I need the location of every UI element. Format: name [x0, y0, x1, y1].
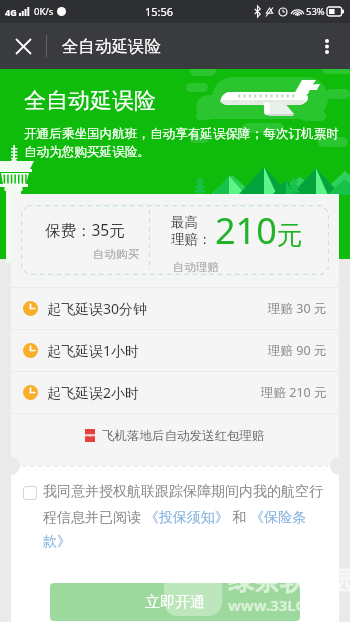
staticText: 0K/s: [34, 5, 54, 18]
button[interactable]: 起飞延误1小时: [11, 330, 339, 371]
staticText: 起飞延误1小时: [47, 341, 140, 360]
staticText: 自动购买: [93, 247, 139, 261]
staticText: 理赔 210 元: [261, 384, 327, 401]
staticText: 我同意并授权航联跟踪保障期间内我的航空行程信息并已阅读 《投保须知》 和 《保险…: [43, 483, 330, 550]
button[interactable]: Close: [0, 23, 46, 69]
button[interactable]: More options: [304, 23, 350, 69]
staticText: 起飞延误2小时: [47, 383, 140, 402]
staticText: 全自动延误险: [24, 87, 156, 115]
staticText: 开通后乘坐国内航班，自动享有延误保障；每次订机票时 自动为您购买延误险。: [24, 126, 339, 160]
staticText: 起飞延误30分钟: [47, 299, 148, 318]
button[interactable]: 立即开通: [50, 583, 300, 621]
staticText: 自动理赔: [173, 260, 219, 274]
staticText: 飞机落地后自动发送红包理赔: [102, 428, 265, 444]
staticText: 53%: [306, 5, 325, 18]
staticText: 保费：35元: [45, 219, 125, 240]
staticText: 理赔 30 元: [268, 300, 327, 317]
staticText: 最高 理赔：: [171, 214, 212, 248]
button[interactable]: 我同意并授权航联跟踪保障期间内我的航空行程信息并已阅读 《投保须知》 和 《保险…: [11, 483, 339, 550]
button[interactable]: 起飞延误30分钟: [11, 288, 339, 329]
staticText: 全自动延误险: [62, 36, 161, 57]
staticText: 立即开通: [145, 593, 205, 612]
staticText: 绿茶软件园: [228, 565, 350, 598]
staticText: 理赔 90 元: [268, 342, 327, 359]
button[interactable]: 起飞延误2小时: [11, 372, 339, 413]
staticText: 4G: [5, 6, 17, 18]
staticText: 210元: [215, 206, 303, 255]
staticText: www.33LC.com: [228, 595, 341, 615]
staticText: 15:56: [145, 4, 174, 19]
